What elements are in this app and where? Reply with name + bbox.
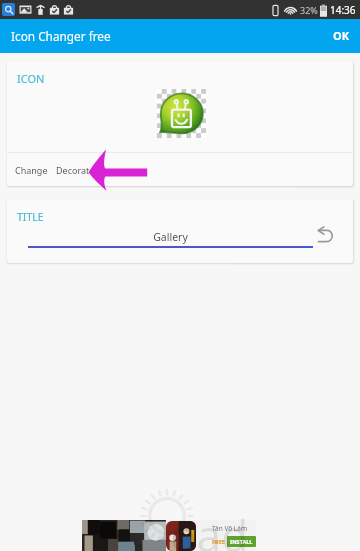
button[interactable]: Undo [313, 222, 337, 246]
staticText: ICON [17, 71, 45, 86]
staticText: oad timeng [170, 505, 360, 551]
staticText: 14:36 [330, 3, 356, 17]
staticText: FREE [212, 538, 225, 545]
staticText: Icon Changer free [11, 28, 111, 44]
button[interactable]: OK [319, 19, 360, 53]
button[interactable]: Change [7, 159, 52, 181]
button[interactable]: Tân Võ Lâm [82, 520, 256, 551]
staticText: INSTALL [230, 538, 253, 545]
staticText: Change [15, 164, 48, 176]
staticText: Decorate [56, 164, 95, 176]
staticText: Gallery [28, 230, 313, 244]
staticText: 32% [300, 4, 318, 16]
staticText: OK [333, 28, 350, 43]
staticText: Tân Võ Lâm [212, 524, 247, 533]
staticText: TITLE [17, 210, 44, 224]
button[interactable]: Decorate [52, 159, 99, 181]
